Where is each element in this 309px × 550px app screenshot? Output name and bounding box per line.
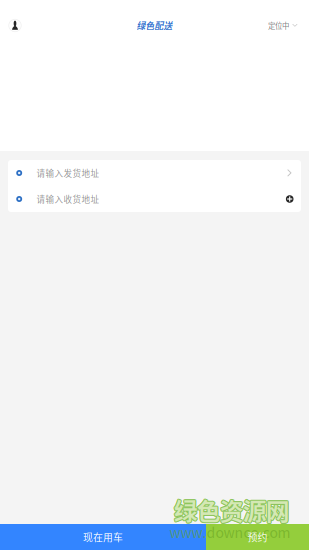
staticText: 绿色资源网 (173, 492, 288, 526)
staticText: 绿色资源网 (173, 493, 288, 527)
staticText: 绿色资源网 (174, 494, 289, 528)
staticText: 绿色资源网 (175, 492, 290, 526)
button[interactable]: 定位中 (254, 10, 298, 40)
button[interactable]: 现在用车 (0, 524, 206, 550)
staticText: 绿色资源网 (174, 493, 289, 527)
button[interactable]: Profile (0, 10, 30, 40)
staticText: 定位中 (268, 20, 289, 31)
button[interactable]: 请输入发货地址 (8, 160, 301, 186)
staticText: 绿色资源网 (174, 492, 289, 526)
staticText: www.downce.com (169, 522, 290, 542)
staticText: 绿色资源网 (175, 493, 290, 527)
staticText: 现在用车 (83, 530, 123, 544)
staticText: 绿色配送 (136, 19, 172, 32)
button[interactable]: 请输入收货地址 (8, 186, 301, 212)
staticText: 请输入发货地址 (36, 167, 99, 179)
staticText: 预约 (247, 530, 267, 544)
button[interactable]: 预约 (206, 524, 309, 550)
staticText: 请输入收货地址 (36, 193, 99, 205)
staticText: 绿色资源网 (175, 494, 290, 528)
staticText: 绿色资源网 (173, 494, 288, 528)
